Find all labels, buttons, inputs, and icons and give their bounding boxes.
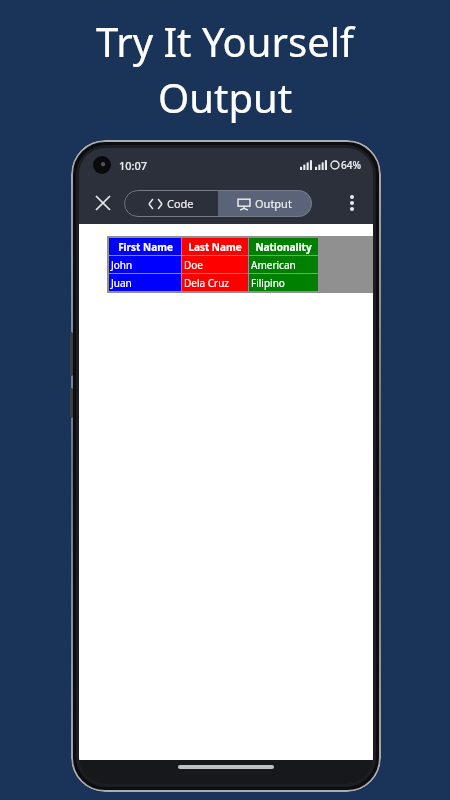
staticText: Nationality xyxy=(255,240,312,254)
staticText: Output xyxy=(255,196,292,211)
staticText: John xyxy=(111,258,133,272)
button[interactable]: Code xyxy=(124,190,218,217)
staticText: Filipino xyxy=(251,276,285,290)
button[interactable]: More options xyxy=(337,188,367,218)
staticText: Doe xyxy=(184,258,203,272)
button[interactable]: Close xyxy=(88,188,118,218)
staticText: First Name xyxy=(118,240,173,254)
staticText: 10:07 xyxy=(119,158,148,173)
staticText: Juan xyxy=(111,276,132,290)
staticText: Dela Cruz xyxy=(184,276,230,290)
staticText: Try It Yourself xyxy=(96,14,354,68)
staticText: American xyxy=(251,258,296,272)
staticText: 64% xyxy=(341,158,361,172)
staticText: Code xyxy=(167,196,194,211)
staticText: Last Name xyxy=(188,240,242,254)
button[interactable]: Output xyxy=(218,190,312,217)
staticText: Output xyxy=(158,70,293,124)
